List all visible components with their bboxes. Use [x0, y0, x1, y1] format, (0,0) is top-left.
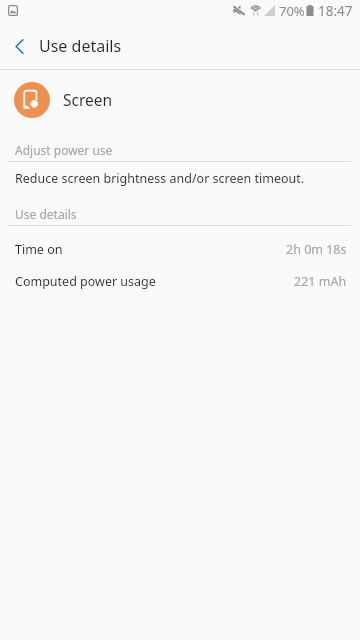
button[interactable]: Computed power usage: [0, 267, 360, 295]
staticText: Screen: [63, 89, 113, 110]
staticText: 221 mAh: [294, 273, 347, 290]
staticText: Adjust power use: [15, 142, 113, 158]
button[interactable]: Time on: [0, 235, 360, 263]
staticText: Time on: [15, 241, 63, 258]
staticText: Use details: [39, 35, 122, 57]
button[interactable]: Reduce screen brightness and/or screen t…: [0, 162, 360, 192]
staticText: 18:47: [318, 2, 353, 20]
staticText: Reduce screen brightness and/or screen t…: [15, 170, 305, 187]
staticText: Computed power usage: [15, 273, 156, 290]
staticText: 70%: [279, 2, 305, 20]
button[interactable]: Navigate up: [4, 30, 40, 66]
staticText: 2h 0m 18s: [286, 241, 347, 258]
staticText: Use details: [15, 206, 77, 222]
button[interactable]: Screen: [0, 70, 360, 128]
